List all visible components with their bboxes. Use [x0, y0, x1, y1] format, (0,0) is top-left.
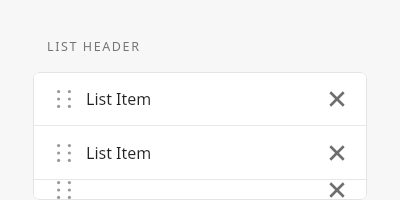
button[interactable]: Reorder: [33, 72, 367, 125]
button[interactable]: Remove item: [318, 180, 356, 200]
button[interactable]: Reorder: [54, 89, 74, 109]
button[interactable]: Reorder: [54, 180, 74, 200]
button[interactable]: Reorder: [33, 126, 367, 179]
button[interactable]: Remove item: [318, 80, 356, 118]
button[interactable]: Remove item: [318, 134, 356, 172]
staticText: List Item: [86, 142, 152, 164]
staticText: List Item: [86, 88, 152, 110]
button[interactable]: Reorder: [54, 143, 74, 163]
staticText: LIST HEADER: [47, 38, 141, 55]
button[interactable]: Reorder: [33, 180, 367, 200]
